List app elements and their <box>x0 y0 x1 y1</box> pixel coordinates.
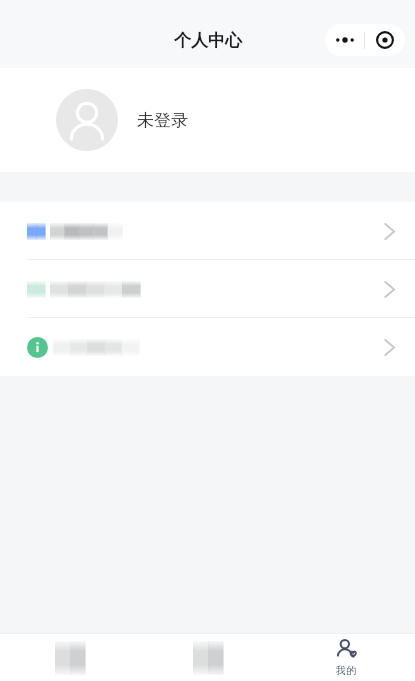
staticText: 我的 <box>336 664 356 677</box>
button[interactable] <box>0 260 415 318</box>
staticText: 未登录 <box>137 110 188 131</box>
button[interactable] <box>0 202 415 260</box>
button[interactable]: 我的 <box>277 634 415 681</box>
button[interactable]: Tab two <box>139 634 277 681</box>
button[interactable]: More and close menu <box>325 24 405 56</box>
button[interactable] <box>0 318 415 376</box>
button[interactable]: 未登录 <box>0 68 415 172</box>
staticText: 个人中心 <box>174 30 242 51</box>
button[interactable]: Tab one <box>0 634 139 681</box>
